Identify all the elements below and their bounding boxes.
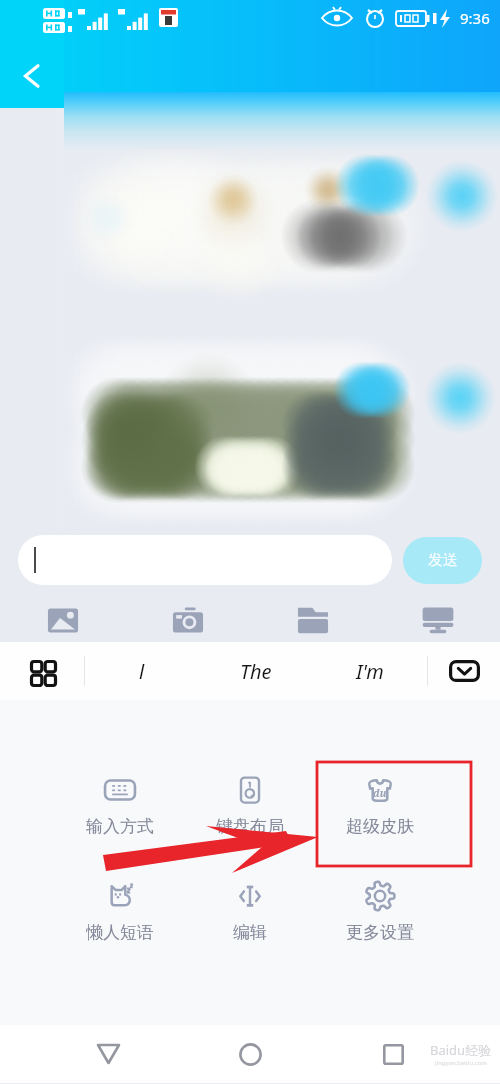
button[interactable]: Back <box>0 44 64 108</box>
staticText: 输入方式 <box>86 816 154 837</box>
button[interactable] <box>18 535 392 585</box>
staticText: Baidu经验 <box>430 1041 492 1059</box>
button[interactable]: 输入方式 <box>55 773 185 879</box>
button[interactable]: 懒人短语 <box>55 879 185 985</box>
button[interactable]: Back <box>73 1025 143 1083</box>
staticText: 键盘布局 <box>216 816 284 837</box>
staticText: 超级皮肤 <box>346 816 414 837</box>
button[interactable]: Screen <box>375 599 500 642</box>
button[interactable]: 键盘布局 <box>185 773 315 879</box>
button[interactable]: Files <box>250 599 375 642</box>
staticText: l <box>139 658 145 685</box>
button[interactable]: Home <box>215 1025 285 1083</box>
staticText: du <box>373 786 387 800</box>
button[interactable]: 更多设置 <box>315 879 445 985</box>
button[interactable]: 发送 <box>403 537 482 584</box>
button[interactable]: The <box>199 642 313 700</box>
button[interactable]: l <box>85 642 199 700</box>
button[interactable]: 编辑 <box>185 879 315 985</box>
staticText: jingyan.baidu.com <box>435 1059 487 1067</box>
button[interactable]: I'm <box>313 642 427 700</box>
staticText: I'm <box>356 658 384 685</box>
staticText: 9:36 <box>460 8 490 28</box>
button[interactable]: Camera <box>125 599 250 642</box>
staticText: 懒人短语 <box>86 922 154 943</box>
button[interactable]: Recents <box>358 1025 428 1083</box>
staticText: 编辑 <box>233 922 267 943</box>
button[interactable]: Gallery <box>0 599 125 642</box>
staticText: 更多设置 <box>346 922 414 943</box>
button[interactable]: du <box>315 773 445 879</box>
button[interactable]: Hide keyboard <box>428 642 500 700</box>
staticText: 发送 <box>428 551 458 570</box>
button[interactable]: Keyboard menu <box>0 642 84 700</box>
staticText: The <box>240 658 272 685</box>
